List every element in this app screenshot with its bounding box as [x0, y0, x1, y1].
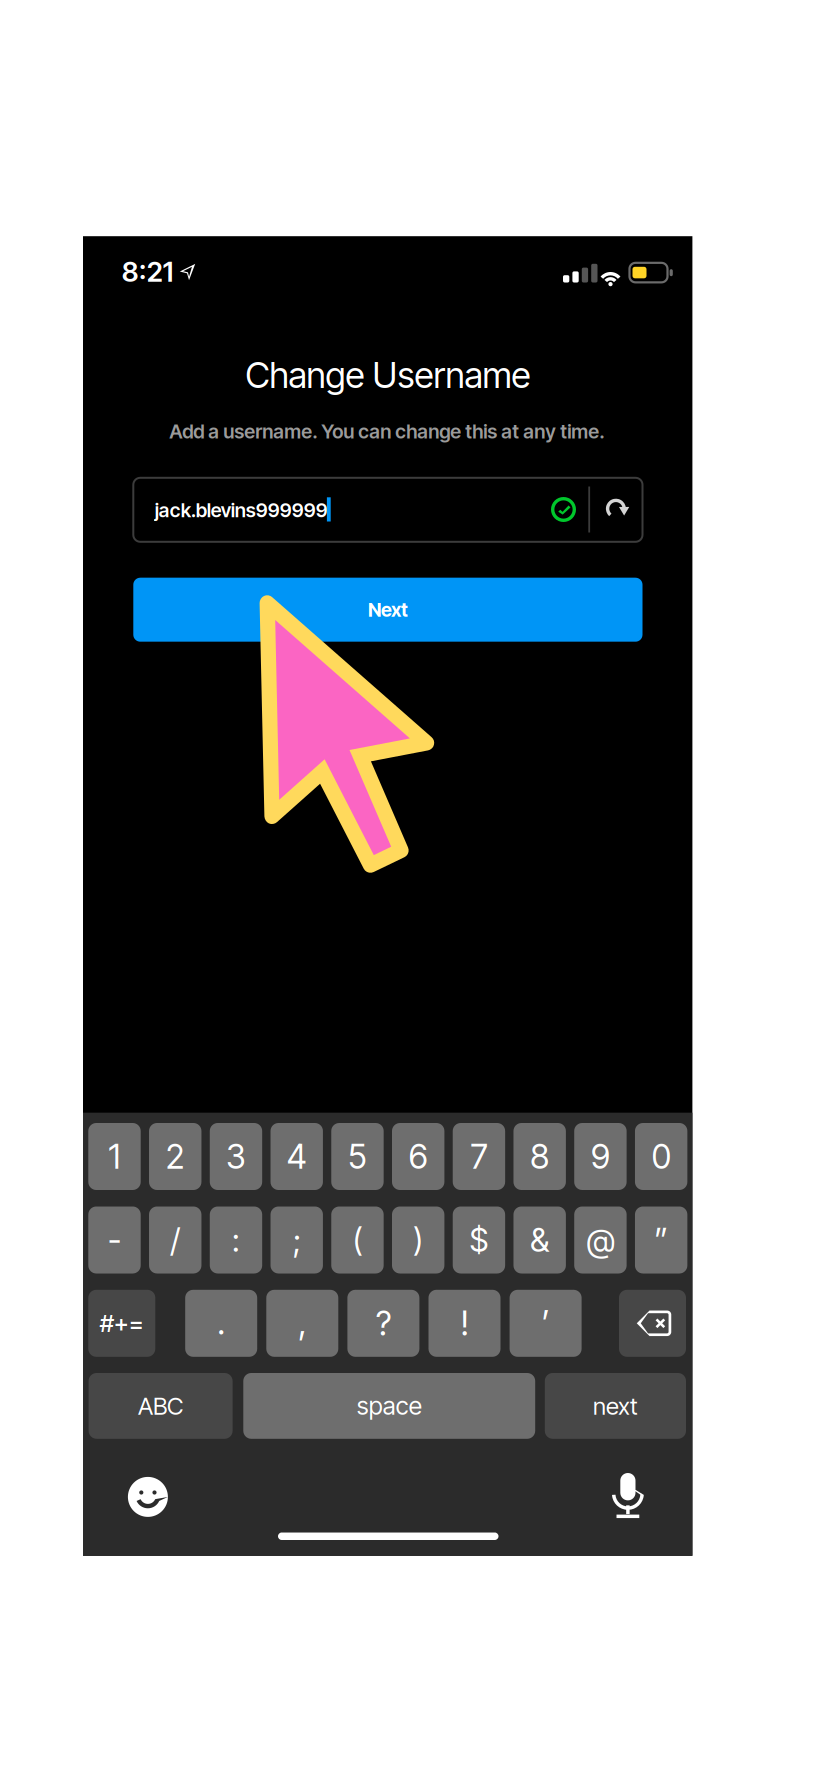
staticText: : [232, 1221, 240, 1259]
staticText: 8 [530, 1136, 549, 1177]
button[interactable]: / [149, 1206, 201, 1273]
staticText: ; [293, 1221, 301, 1259]
button[interactable]: Next [133, 578, 642, 642]
staticText: Add a username. You can change this at a… [169, 420, 605, 443]
button[interactable]: , [266, 1290, 338, 1357]
button[interactable]: ! [428, 1290, 500, 1357]
button[interactable]: ” [635, 1206, 687, 1273]
staticText: ’ [542, 1303, 550, 1343]
button[interactable]: ) [392, 1206, 444, 1273]
staticText: next [593, 1391, 638, 1420]
staticText: 8:21 [122, 255, 174, 288]
button[interactable]: 8 [513, 1123, 566, 1190]
button[interactable]: space [243, 1373, 535, 1439]
staticText: 3 [226, 1136, 246, 1177]
staticText: 1 [108, 1136, 120, 1177]
staticText: Change Username [245, 353, 530, 396]
staticText: #+= [100, 1309, 144, 1338]
staticText: space [357, 1391, 422, 1421]
staticText: - [108, 1221, 121, 1259]
staticText: 7 [470, 1136, 487, 1177]
button[interactable]: - [88, 1206, 141, 1273]
button[interactable]: Delete [619, 1290, 686, 1357]
button[interactable]: 5 [331, 1123, 384, 1190]
button[interactable]: $ [453, 1206, 505, 1273]
button[interactable]: #+= [88, 1290, 155, 1357]
button[interactable]: 9 [574, 1123, 627, 1190]
button[interactable]: . [185, 1290, 257, 1357]
staticText: 6 [409, 1136, 428, 1177]
staticText: ) [413, 1221, 423, 1259]
button[interactable]: 0 [635, 1123, 687, 1190]
button[interactable]: 3 [210, 1123, 262, 1190]
staticText: jack.blevins999999 [155, 498, 328, 522]
staticText: @ [586, 1221, 614, 1259]
button[interactable]: ? [347, 1290, 419, 1357]
button[interactable]: ’ [510, 1290, 582, 1357]
staticText: ! [460, 1303, 468, 1343]
staticText: 0 [652, 1136, 671, 1177]
staticText: ? [376, 1303, 391, 1343]
staticText: Next [368, 598, 408, 621]
staticText: 2 [166, 1136, 185, 1177]
button[interactable]: 1 [88, 1123, 141, 1190]
button[interactable]: next [545, 1373, 686, 1439]
staticText: 4 [287, 1136, 307, 1177]
button[interactable]: ( [331, 1206, 384, 1273]
staticText: . [217, 1302, 225, 1342]
staticText: / [170, 1221, 180, 1259]
button[interactable]: 7 [453, 1123, 505, 1190]
staticText: ” [654, 1221, 668, 1259]
button[interactable]: 4 [270, 1123, 323, 1190]
button[interactable]: & [513, 1206, 566, 1273]
button[interactable]: Dictation [611, 1473, 644, 1519]
staticText: , [298, 1302, 306, 1342]
staticText: 9 [591, 1136, 610, 1177]
button[interactable]: @ [574, 1206, 627, 1273]
button[interactable]: ; [270, 1206, 323, 1273]
staticText: & [530, 1221, 549, 1259]
button[interactable]: Emoji keyboard [128, 1477, 168, 1517]
button[interactable]: ABC [89, 1373, 233, 1439]
button[interactable]: 6 [392, 1123, 444, 1190]
button[interactable]: : [210, 1206, 262, 1273]
staticText: ( [352, 1221, 362, 1259]
button[interactable]: 2 [149, 1123, 201, 1190]
staticText: $ [469, 1221, 488, 1259]
staticText: ABC [138, 1391, 183, 1420]
staticText: 5 [348, 1136, 367, 1177]
